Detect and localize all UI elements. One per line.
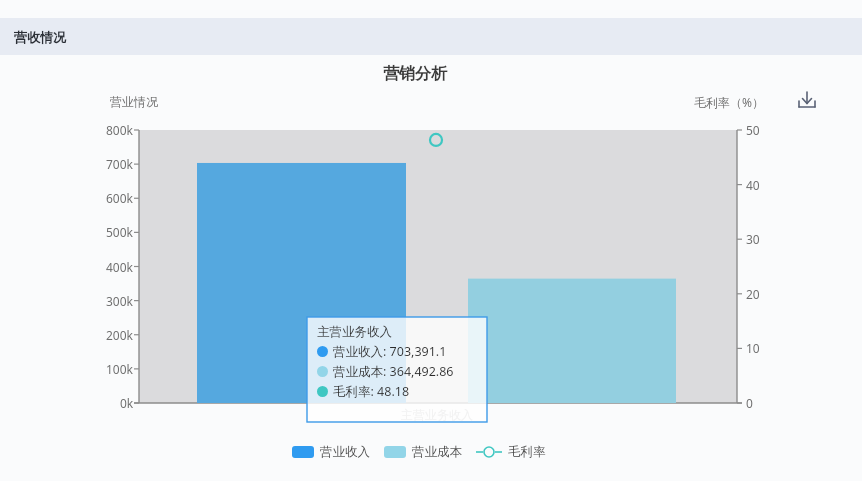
staticText: 30 — [746, 231, 760, 247]
button[interactable]: 营业成本 — [384, 444, 462, 460]
button[interactable]: 营业收入 — [292, 444, 370, 460]
button[interactable]: 营收情况 — [0, 18, 862, 55]
staticText: 营业收入 — [320, 444, 370, 460]
staticText: 10 — [746, 340, 760, 356]
staticText: 毛利率 — [508, 444, 546, 460]
staticText: 500k — [106, 224, 134, 240]
staticText: 0 — [746, 395, 753, 411]
button[interactable]: 毛利率 — [476, 444, 546, 460]
staticText: 营业成本 — [412, 444, 462, 460]
staticText: 营销分析 — [383, 64, 447, 84]
staticText: 营业成本: 364,492.86 — [333, 363, 454, 380]
staticText: 600k — [106, 190, 134, 206]
staticText: 营收情况 — [14, 29, 66, 45]
staticText: 400k — [106, 259, 134, 275]
staticText: 主营业务收入 — [317, 324, 392, 340]
staticText: 50 — [746, 122, 760, 138]
button[interactable]: Download — [794, 88, 820, 114]
staticText: 100k — [106, 361, 134, 377]
staticText: 700k — [106, 156, 134, 172]
staticText: 0k — [120, 395, 134, 411]
staticText: 毛利率（%） — [694, 94, 764, 110]
staticText: 20 — [746, 286, 760, 302]
staticText: 营业情况 — [110, 94, 158, 109]
staticText: 40 — [746, 177, 760, 193]
staticText: 营业收入: 703,391.1 — [333, 343, 447, 360]
staticText: 200k — [106, 327, 134, 343]
staticText: 毛利率: 48.18 — [333, 383, 410, 400]
staticText: 主营业务收入 — [401, 407, 473, 422]
staticText: 800k — [106, 122, 134, 138]
staticText: 300k — [106, 293, 134, 309]
